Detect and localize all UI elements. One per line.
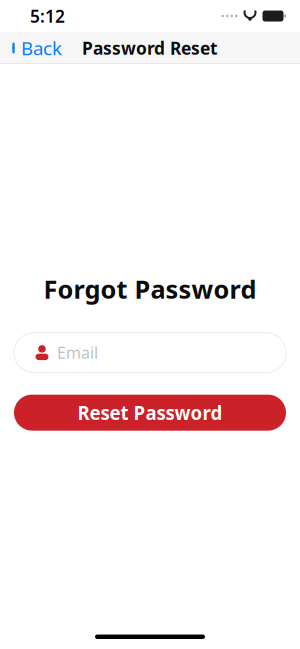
staticText: Back	[21, 36, 62, 60]
staticText: 5:12	[30, 4, 65, 27]
button[interactable]: Back	[0, 29, 62, 67]
staticText: Reset Password	[77, 400, 222, 425]
button[interactable]: Reset Password	[14, 395, 286, 431]
staticText: Forgot Password	[43, 272, 256, 306]
staticText: Password Reset	[82, 36, 218, 59]
staticText: Email	[57, 342, 98, 363]
